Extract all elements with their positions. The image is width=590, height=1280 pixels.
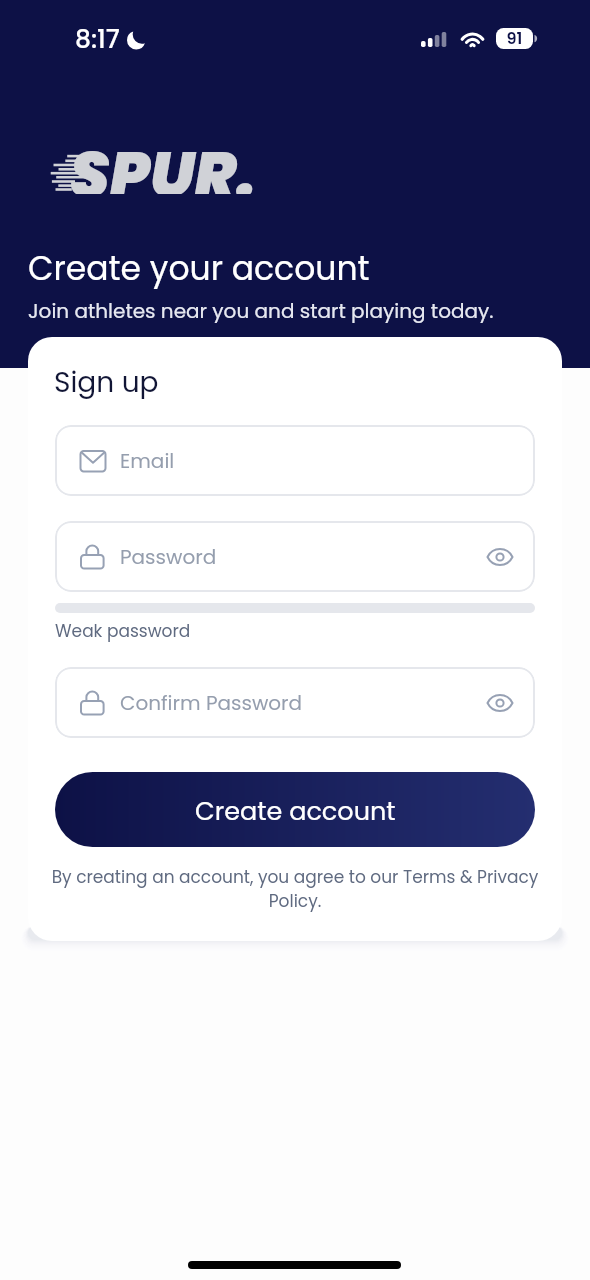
button[interactable]: Password [55, 521, 535, 592]
button[interactable]: Email [55, 425, 535, 496]
staticText: Join athletes near you and start playing… [28, 297, 494, 325]
staticText: Password [120, 543, 217, 571]
button[interactable]: Show password [483, 540, 517, 574]
staticText: By creating an account, you agree to our… [45, 865, 545, 913]
staticText: Create your account [28, 245, 370, 291]
button[interactable]: Create account [55, 772, 535, 847]
staticText: SPUR. [70, 132, 256, 194]
staticText: Confirm Password [120, 689, 303, 717]
staticText: Create account [195, 793, 396, 829]
staticText: Weak password [55, 619, 191, 643]
button[interactable]: Confirm Password [55, 667, 535, 738]
button[interactable]: Show password [483, 686, 517, 720]
staticText: 91 [496, 27, 533, 48]
staticText: Email [120, 447, 175, 475]
staticText: 8:17 [75, 22, 120, 57]
staticText: Sign up [54, 363, 159, 402]
